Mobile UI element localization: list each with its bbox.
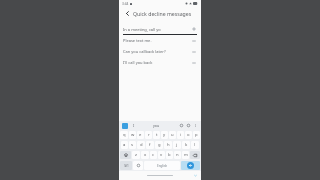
staticText: b <box>168 152 171 158</box>
button[interactable]: Backspace <box>190 151 200 159</box>
button[interactable]: Space <box>144 161 180 170</box>
button[interactable]: Enter <box>181 161 200 170</box>
button[interactable]: k <box>182 141 190 149</box>
button[interactable]: i <box>177 131 184 139</box>
staticText: t <box>156 132 158 138</box>
button[interactable]: I'll call you back <box>119 57 201 68</box>
staticText: Please text me. <box>123 38 191 43</box>
staticText: q <box>123 132 126 138</box>
other: Edit <box>191 38 197 44</box>
staticText: I'll call you back <box>123 60 191 65</box>
button[interactable]: b <box>166 151 173 159</box>
button[interactable]: a <box>121 141 128 149</box>
staticText: h <box>167 142 170 148</box>
staticText: In a meeting, call yo <box>123 27 191 32</box>
button[interactable]: o <box>185 131 192 139</box>
staticText: v <box>160 152 163 158</box>
staticText: English <box>157 164 168 168</box>
button[interactable]: p <box>193 131 200 139</box>
button[interactable]: In a meeting, call yo <box>119 24 201 35</box>
button[interactable]: Can you callback later? <box>119 46 201 57</box>
staticText: f <box>149 142 151 148</box>
button[interactable]: x <box>141 151 149 159</box>
staticText: g <box>158 142 161 148</box>
staticText: w <box>131 132 135 138</box>
staticText: l <box>194 142 196 148</box>
button[interactable]: More options <box>193 123 198 128</box>
button[interactable]: Back <box>123 9 132 18</box>
button[interactable]: m <box>182 151 189 159</box>
button[interactable]: g <box>155 141 163 149</box>
staticText: d <box>140 142 143 148</box>
staticText: n <box>176 152 179 158</box>
button[interactable]: v <box>158 151 165 159</box>
button[interactable]: c <box>150 151 157 159</box>
staticText: o <box>187 132 190 138</box>
staticText: e <box>139 132 142 138</box>
staticText: j <box>176 142 178 148</box>
staticText: k <box>185 142 188 148</box>
staticText: p <box>195 132 198 138</box>
staticText: x <box>144 152 147 158</box>
button[interactable]: e <box>137 131 144 139</box>
staticText: s <box>131 142 134 148</box>
button[interactable]: l <box>191 141 199 149</box>
staticText: I <box>133 123 135 128</box>
button[interactable]: h <box>164 141 172 149</box>
staticText: Can you callback later? <box>123 49 191 54</box>
button[interactable]: Symbols <box>120 161 132 170</box>
button[interactable]: n <box>174 151 181 159</box>
button[interactable]: Please text me. <box>119 35 201 46</box>
other: Add <box>191 26 197 32</box>
staticText: r <box>148 132 150 138</box>
staticText: you <box>153 123 160 128</box>
button[interactable]: Shift <box>120 151 131 159</box>
button[interactable]: Emoji keyboard <box>133 161 143 170</box>
button[interactable]: t <box>153 131 160 139</box>
staticText: y <box>163 132 166 138</box>
button[interactable]: q <box>120 131 128 139</box>
button[interactable]: w <box>129 131 136 139</box>
staticText: c <box>152 152 155 158</box>
button[interactable]: u <box>169 131 176 139</box>
button[interactable]: z <box>132 151 140 159</box>
other: Edit <box>191 60 197 66</box>
staticText: 3:44 <box>122 2 129 6</box>
staticText: a <box>123 142 126 148</box>
button[interactable]: r <box>145 131 152 139</box>
button[interactable]: y <box>161 131 168 139</box>
staticText: z <box>135 152 137 158</box>
button[interactable]: Voice input <box>186 123 191 128</box>
staticText: u <box>171 132 174 138</box>
button[interactable]: f <box>146 141 154 149</box>
button[interactable]: s <box>129 141 136 149</box>
staticText: !#1 <box>124 164 129 168</box>
button[interactable]: d <box>137 141 145 149</box>
button[interactable]: Keyboard settings <box>122 123 128 129</box>
other: Edit <box>191 49 197 55</box>
staticText: m <box>184 152 188 158</box>
button[interactable]: Hide keyboard <box>193 173 198 178</box>
button[interactable]: Emoji <box>179 123 184 128</box>
staticText: i <box>180 132 182 138</box>
staticText: Quick decline messages <box>133 10 192 17</box>
button[interactable]: j <box>173 141 181 149</box>
